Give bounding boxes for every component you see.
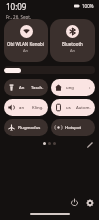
- staticText: 10:09: [6, 1, 27, 12]
- button[interactable]: Bluetooth: [50, 19, 95, 62]
- staticText: An: [23, 48, 29, 53]
- staticText: ›: [89, 85, 91, 91]
- staticText: Hotspot: [65, 125, 82, 131]
- button[interactable]: Obi WLAN Kenobi: [4, 19, 48, 62]
- button[interactable]: [4, 66, 95, 74]
- staticText: Kling.: [32, 105, 44, 111]
- staticText: Tasch.: [31, 85, 44, 91]
- staticText: Bluetooth: [62, 41, 83, 47]
- staticText: An: [70, 48, 76, 53]
- staticText: An: [19, 85, 25, 91]
- button[interactable]: an: [4, 99, 48, 116]
- staticText: Obi WLAN Kenobi: [7, 41, 45, 47]
- staticText: an: [19, 105, 25, 111]
- staticText: Autom.: [76, 105, 91, 111]
- staticText: us: [66, 105, 71, 111]
- staticText: 100%: [82, 3, 94, 9]
- staticText: ung: [66, 85, 74, 91]
- button[interactable]: Flugmodus: [4, 119, 48, 136]
- button[interactable]: Settings: [83, 196, 96, 209]
- button[interactable]: us: [51, 99, 95, 116]
- button[interactable]: Hotspot: [51, 119, 95, 136]
- button[interactable]: ung: [51, 79, 95, 96]
- button[interactable]: Power: [68, 196, 81, 209]
- button[interactable]: An: [4, 79, 48, 96]
- staticText: Fr., 26. Sept.: [6, 14, 32, 19]
- button[interactable]: Edit tiles: [84, 139, 95, 150]
- staticText: Flugmodus: [18, 125, 41, 131]
